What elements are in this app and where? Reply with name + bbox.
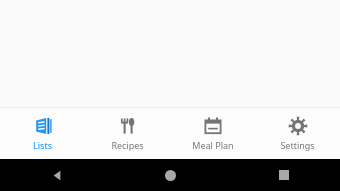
button[interactable]: Lists [0, 108, 85, 159]
staticText: Meal Plan [192, 139, 234, 151]
button[interactable]: Home [114, 159, 227, 191]
button[interactable]: Recipes [85, 108, 170, 159]
staticText: Recipes [111, 139, 144, 151]
button[interactable]: Recent apps [227, 159, 340, 191]
staticText: Lists [33, 139, 52, 151]
button[interactable]: Meal Plan [170, 108, 255, 159]
button[interactable]: Settings [255, 108, 340, 159]
staticText: Settings [280, 139, 315, 151]
button[interactable]: Back [0, 159, 114, 191]
